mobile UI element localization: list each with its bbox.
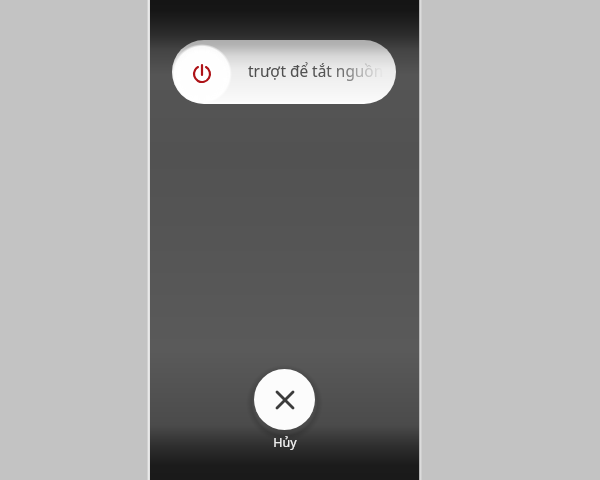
- button[interactable]: Power off: [172, 44, 232, 104]
- staticText: Hủy: [273, 434, 297, 451]
- button[interactable]: trượt để tắt nguồn: [172, 40, 396, 104]
- button[interactable]: Cancel: [254, 369, 315, 447]
- staticText: trượt để tắt nguồn: [248, 61, 384, 82]
- other: Cancel: [254, 369, 315, 430]
